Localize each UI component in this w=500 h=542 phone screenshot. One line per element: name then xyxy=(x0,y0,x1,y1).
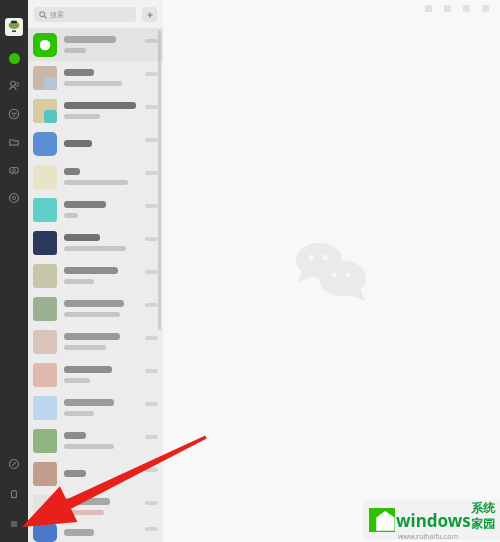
button[interactable] xyxy=(28,358,163,391)
button[interactable]: Contacts xyxy=(4,76,24,96)
staticText: windows xyxy=(396,509,471,532)
button[interactable] xyxy=(28,94,163,127)
button[interactable] xyxy=(28,523,163,542)
button[interactable] xyxy=(28,325,163,358)
button[interactable] xyxy=(28,490,163,523)
button[interactable] xyxy=(28,259,163,292)
button[interactable]: Close xyxy=(477,1,493,15)
button[interactable]: Maximize xyxy=(458,1,474,15)
button[interactable] xyxy=(28,127,163,160)
button[interactable]: Phone xyxy=(4,484,24,504)
button[interactable]: 搜索 xyxy=(34,7,136,22)
button[interactable] xyxy=(28,391,163,424)
button[interactable]: Favorites xyxy=(4,104,24,124)
button[interactable] xyxy=(28,61,163,94)
button[interactable]: Minimize xyxy=(439,1,455,15)
button[interactable]: Files xyxy=(4,132,24,152)
button[interactable]: Menu xyxy=(4,514,24,534)
button[interactable]: Moments xyxy=(4,160,24,180)
button[interactable] xyxy=(28,457,163,490)
button[interactable] xyxy=(28,292,163,325)
button[interactable]: Mute xyxy=(420,1,436,15)
button[interactable] xyxy=(28,193,163,226)
staticText: 系统家园 xyxy=(471,500,500,532)
button[interactable] xyxy=(28,226,163,259)
button[interactable] xyxy=(28,28,163,61)
button[interactable] xyxy=(28,424,163,457)
button[interactable]: Profile xyxy=(5,18,23,36)
staticText: www.ruihaifu.com xyxy=(398,532,458,540)
button[interactable]: Mini Programs xyxy=(4,454,24,474)
staticText: 搜索 xyxy=(50,10,64,19)
button[interactable] xyxy=(28,160,163,193)
button[interactable]: Chats xyxy=(4,48,24,68)
button[interactable]: Settings xyxy=(4,188,24,208)
button[interactable]: Add xyxy=(142,7,157,22)
